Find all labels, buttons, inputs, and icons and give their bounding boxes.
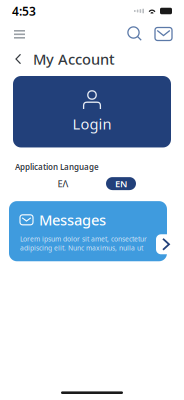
- button[interactable]: Messages: [149, 23, 178, 44]
- staticText: Application Language: [15, 161, 99, 172]
- staticText: Login: [72, 114, 111, 133]
- button[interactable]: Back: [11, 49, 26, 68]
- button[interactable]: Search: [121, 22, 149, 46]
- button[interactable]: Open messages: [156, 234, 176, 254]
- button[interactable]: Login: [13, 76, 171, 147]
- button[interactable]: EN: [106, 177, 136, 190]
- staticText: ΕΛ: [57, 177, 68, 190]
- staticText: 4:53: [12, 3, 36, 19]
- staticText: Messages: [39, 210, 106, 230]
- staticText: EN: [115, 177, 127, 190]
- button[interactable]: ΕΛ: [48, 177, 78, 190]
- staticText: My Account: [33, 49, 115, 69]
- button[interactable]: Menu: [6, 23, 34, 45]
- staticText: Lorem ipsum dolor sit amet, consectetur …: [20, 235, 147, 252]
